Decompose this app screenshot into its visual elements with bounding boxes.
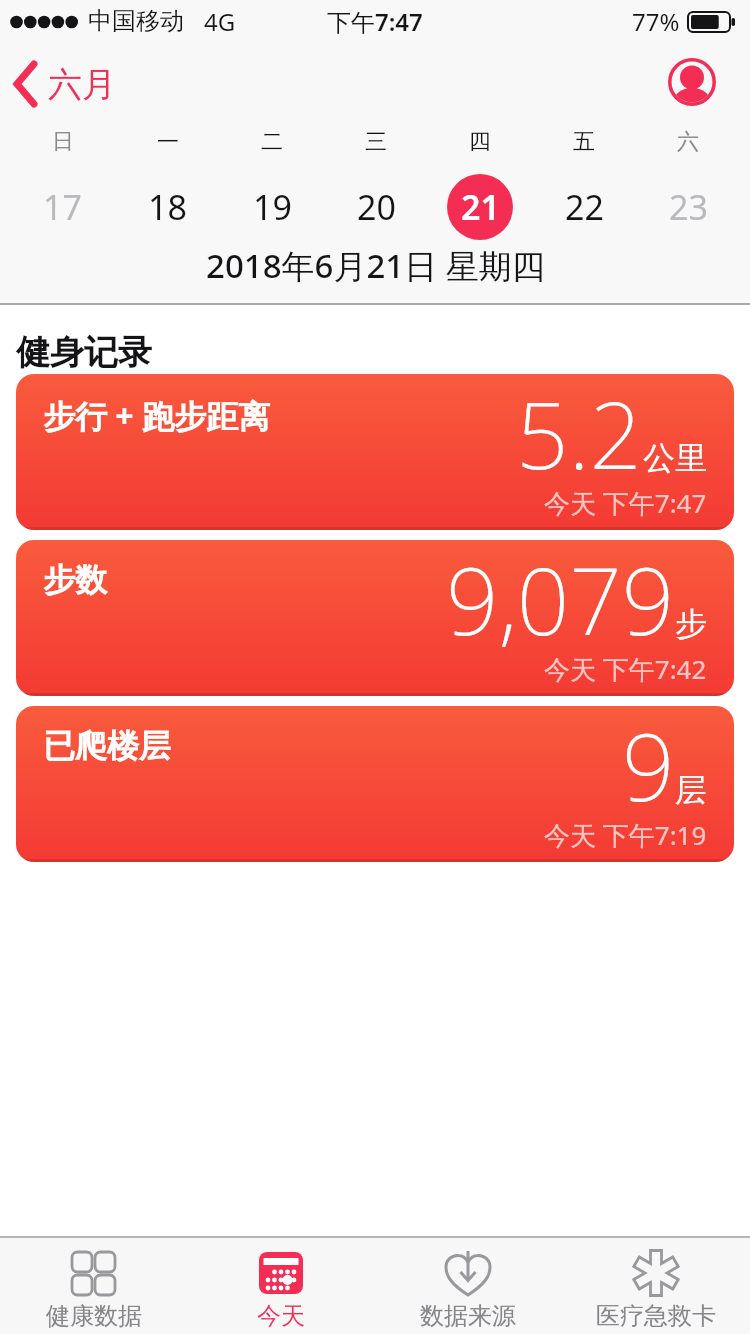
staticText: 健身记录 [16, 331, 152, 374]
staticText: 9,079 [446, 540, 675, 662]
staticText: 步数 [43, 560, 107, 600]
staticText: 17 [43, 184, 82, 230]
staticText: 三 [365, 128, 387, 156]
staticText: 医疗急救卡 [596, 1301, 716, 1331]
staticText: 今天 下午7:19 [544, 817, 707, 853]
staticText: 4G [204, 5, 236, 38]
button[interactable]: 步行 + 跑步距离 [16, 374, 734, 530]
staticText: 中国移动 [88, 6, 184, 36]
button[interactable]: 22 [532, 172, 636, 242]
staticText: 18 [148, 184, 187, 230]
staticText: 19 [253, 184, 292, 230]
button[interactable]: 18 [115, 172, 220, 242]
staticText: 23 [669, 184, 708, 230]
staticText: 步行 + 跑步距离 [43, 394, 270, 438]
staticText: 今天 [257, 1301, 305, 1331]
staticText: 一 [157, 128, 179, 156]
button[interactable]: 步数 [16, 540, 734, 696]
staticText: 公里 [643, 438, 707, 478]
button[interactable]: 六月 [12, 60, 116, 108]
button[interactable]: 20 [324, 172, 428, 242]
button[interactable]: 已爬楼层 [16, 706, 734, 862]
button[interactable]: 17 [10, 172, 115, 242]
staticText: 已爬楼层 [43, 726, 171, 766]
staticText: 5.2 [516, 374, 643, 496]
staticText: 2018年6月21日 星期四 [206, 243, 545, 288]
staticText: 四 [469, 128, 491, 156]
staticText: 22 [565, 184, 604, 230]
staticText: 日 [52, 128, 74, 156]
staticText: 数据来源 [420, 1301, 516, 1331]
button[interactable] [668, 58, 716, 106]
staticText: 六月 [48, 63, 116, 106]
button[interactable]: 19 [220, 172, 324, 242]
button[interactable]: 23 [636, 172, 740, 242]
staticText: 下午7:47 [327, 5, 423, 38]
staticText: 二 [261, 128, 283, 156]
staticText: 健康数据 [46, 1301, 142, 1331]
button[interactable]: 健康数据 [0, 1238, 187, 1334]
staticText: 77% [632, 5, 680, 38]
staticText: 20 [357, 184, 396, 230]
button[interactable]: 21 [428, 172, 532, 242]
staticText: 层 [675, 770, 707, 810]
button[interactable]: 医疗急救卡 [562, 1238, 750, 1334]
staticText: 五 [573, 128, 595, 156]
staticText: 21 [461, 184, 500, 230]
button[interactable]: 数据来源 [374, 1238, 562, 1334]
staticText: 9 [622, 706, 675, 828]
staticText: 今天 下午7:47 [544, 485, 707, 521]
staticText: 今天 下午7:42 [544, 651, 707, 687]
staticText: 六 [677, 128, 699, 156]
staticText: 步 [675, 604, 707, 644]
button[interactable]: 今天 [187, 1238, 374, 1334]
